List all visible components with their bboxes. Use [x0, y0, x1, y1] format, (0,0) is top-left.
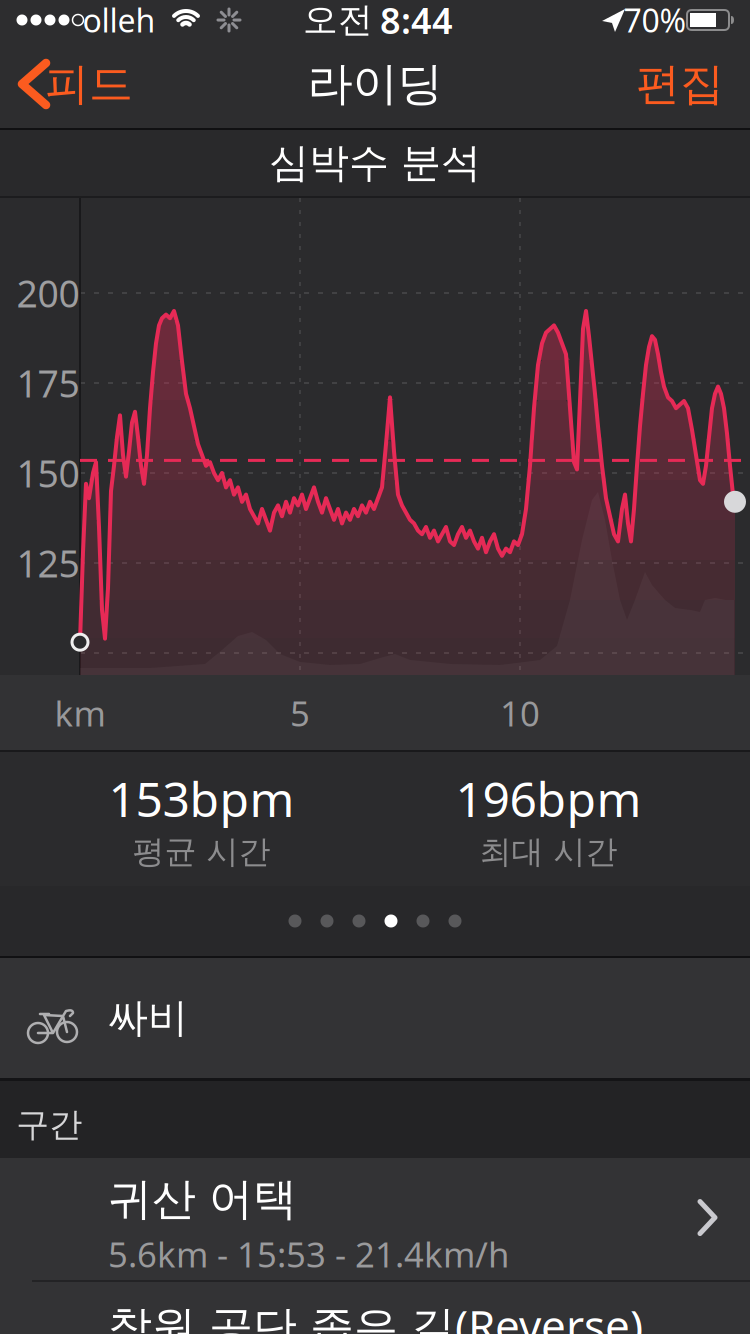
staticText: 귀산 어택 [108, 1172, 297, 1226]
staticText: 150 [16, 448, 79, 498]
staticText: 최대 시간 [479, 832, 617, 871]
staticText: 10 [500, 690, 540, 736]
button[interactable]: 싸비 [0, 958, 750, 1078]
staticText: 편집 [636, 57, 724, 111]
staticText: 심박수 분석 [269, 138, 481, 187]
staticText: 125 [16, 538, 79, 588]
staticText: 175 [16, 358, 79, 408]
staticText: 5.6km - 15:53 - 21.4km/h [108, 1231, 509, 1277]
staticText: 196bpm [455, 766, 641, 830]
staticText: 라이딩 [307, 56, 442, 112]
staticText: 평균 시간 [132, 832, 270, 871]
button[interactable]: 피드 [0, 40, 150, 128]
staticText: 오전 [303, 0, 373, 41]
staticText: 구간 [16, 1104, 82, 1145]
button[interactable]: 귀산 어택 [0, 1158, 750, 1280]
button[interactable]: 편집 [625, 40, 735, 128]
staticText: km [54, 690, 105, 736]
staticText: 8:44 [380, 0, 453, 44]
staticText: 5 [290, 690, 310, 736]
staticText: 70% [623, 0, 686, 41]
staticText: 153bpm [108, 766, 294, 830]
staticText: 200 [16, 268, 79, 318]
staticText: olleh [82, 0, 155, 41]
staticText: 싸비 [108, 993, 188, 1042]
staticText: 창원 공단 좁은 길(Reverse) [108, 1296, 643, 1334]
button[interactable]: 창원 공단 좁은 길(Reverse) [0, 1280, 750, 1334]
staticText: 피드 [45, 57, 133, 111]
